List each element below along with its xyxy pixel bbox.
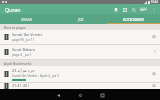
staticText: Recent pages bbox=[4, 25, 26, 30]
button[interactable]: More options bbox=[150, 6, 157, 13]
staticText: JUZ bbox=[78, 17, 84, 22]
staticText: page 4 , juz 1 bbox=[12, 53, 32, 57]
button[interactable]: Surat Bakara bbox=[0, 45, 160, 59]
staticText: Surah Ibn Verder - Ayah 4, juz 3 bbox=[12, 74, 59, 78]
button[interactable]: Translation bbox=[139, 5, 148, 13]
staticText: 44 bbox=[152, 35, 156, 39]
button[interactable]: Grid view bbox=[121, 6, 128, 13]
staticText: 44 bbox=[152, 84, 156, 88]
staticText: 44 bbox=[152, 72, 156, 76]
button[interactable]: Home bbox=[76, 91, 84, 99]
staticText: Surat Bakara bbox=[12, 47, 35, 52]
button[interactable]: Surah Ibn Verder bbox=[0, 30, 160, 44]
staticText: 31:41 آ 40 bbox=[12, 83, 30, 88]
button[interactable]: Back bbox=[54, 91, 62, 99]
button[interactable]: Recents bbox=[98, 91, 106, 99]
staticText: Ayah Bookmarks bbox=[4, 61, 32, 66]
button[interactable]: جزء عم آية 23 bbox=[0, 66, 160, 82]
button[interactable]: JUZ bbox=[54, 14, 107, 24]
staticText: BOOKMARKS bbox=[123, 17, 145, 22]
staticText: جزء عم آية 23 bbox=[12, 68, 35, 73]
staticText: SURAH bbox=[21, 17, 33, 22]
button[interactable]: 31:41 آ 40 bbox=[0, 83, 160, 89]
staticText: Surah Ibn Verder bbox=[12, 32, 43, 37]
staticText: 10:44 bbox=[151, 0, 158, 4]
button[interactable]: Bookmark bbox=[112, 6, 119, 13]
staticText: Quran bbox=[5, 6, 21, 13]
button[interactable]: BOOKMARKS bbox=[107, 14, 160, 24]
staticText: 1 bbox=[154, 50, 156, 54]
button[interactable]: SURAH bbox=[0, 14, 54, 24]
button[interactable]: Search bbox=[130, 6, 137, 13]
staticText: page 95, juz 11 bbox=[12, 38, 35, 42]
